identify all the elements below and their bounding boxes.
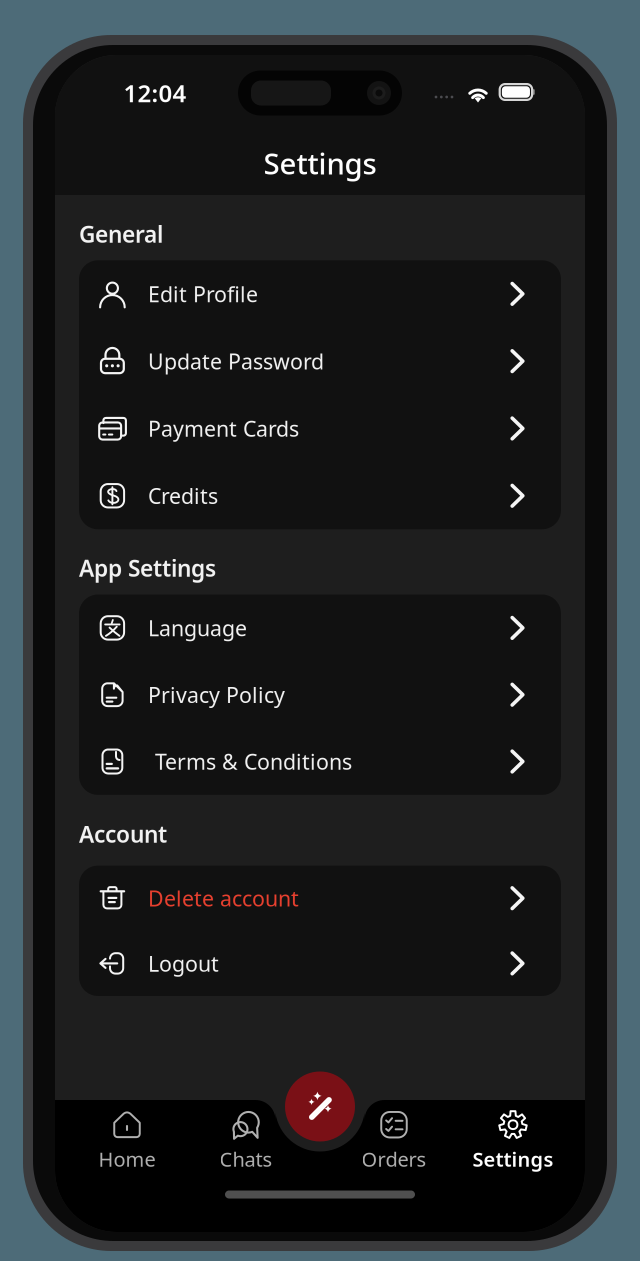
- button[interactable]: Credits: [79, 462, 561, 529]
- button[interactable]: Settings: [190, 139, 450, 187]
- button[interactable]: Privacy Policy: [79, 661, 561, 728]
- staticText: Payment Cards: [148, 414, 299, 443]
- staticText: Settings: [263, 143, 376, 182]
- staticText: Settings: [472, 1146, 553, 1172]
- staticText: General: [79, 219, 163, 249]
- button[interactable]: Delete account: [79, 866, 561, 931]
- staticText: Orders: [361, 1146, 426, 1172]
- staticText: Language: [148, 614, 247, 642]
- staticText: Terms & Conditions: [155, 747, 352, 776]
- button[interactable]: Create: [282, 1068, 358, 1144]
- staticText: Update Password: [148, 347, 324, 375]
- staticText: Delete account: [148, 884, 299, 912]
- staticText: App Settings: [79, 553, 216, 583]
- button[interactable]: Orders: [331, 1107, 457, 1175]
- button[interactable]: Language: [79, 594, 561, 661]
- button[interactable]: Logout: [79, 931, 561, 996]
- button[interactable]: Chats: [183, 1107, 309, 1175]
- staticText: Edit Profile: [148, 280, 258, 308]
- staticText: Chats: [219, 1146, 272, 1172]
- button[interactable]: Edit Profile: [79, 260, 561, 327]
- staticText: Home: [98, 1146, 155, 1172]
- button[interactable]: Update Password: [79, 327, 561, 395]
- staticText: Privacy Policy: [148, 680, 285, 709]
- staticText: Logout: [148, 949, 219, 977]
- button[interactable]: Home: [64, 1107, 190, 1175]
- staticText: Account: [79, 819, 167, 849]
- button[interactable]: Payment Cards: [79, 395, 561, 462]
- staticText: 12:04: [123, 77, 186, 109]
- button[interactable]: Terms & Conditions: [79, 728, 561, 795]
- button[interactable]: Settings: [450, 1107, 576, 1175]
- staticText: Credits: [148, 482, 218, 510]
